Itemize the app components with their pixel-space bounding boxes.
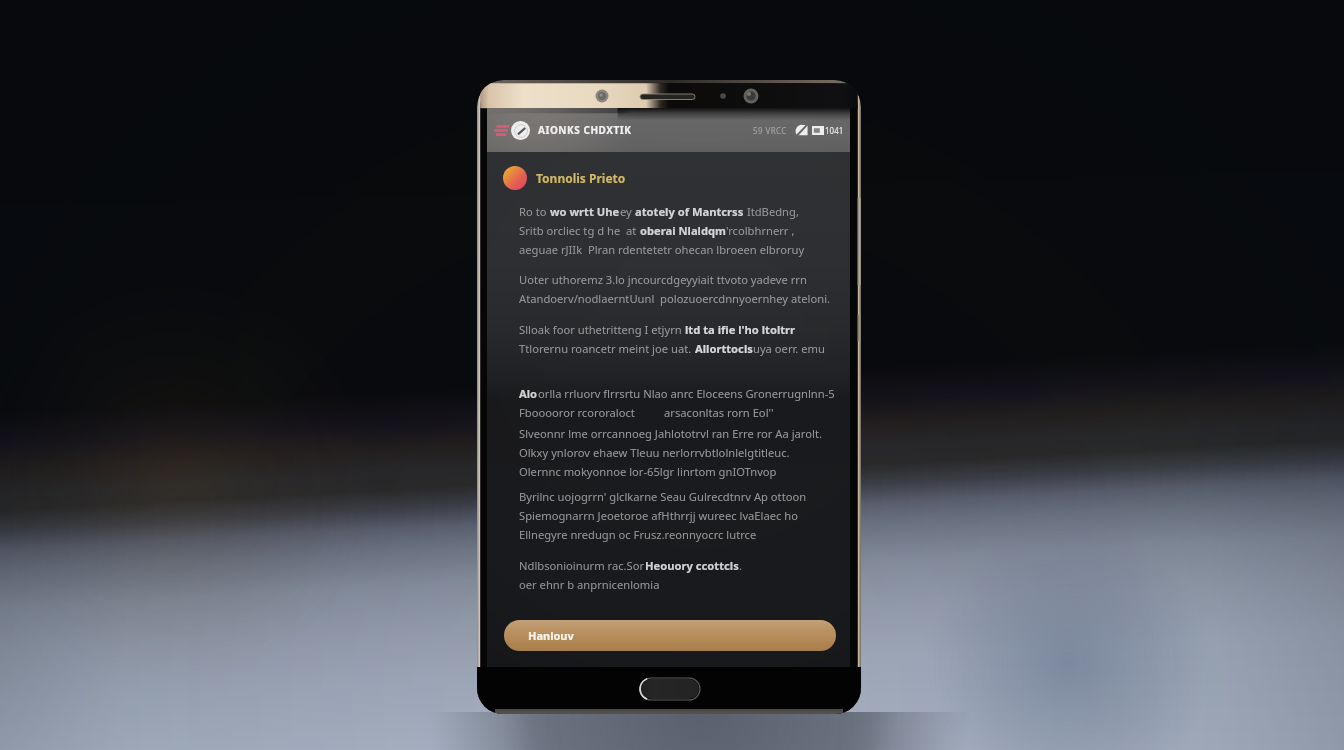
staticText: atotely of Mantcrss (635, 204, 744, 219)
staticText: Ttlorernu roancetr meint joe uat. (519, 341, 695, 356)
staticText: Olernnc mokyonnoe lor-65lgr linrtom gnIO… (519, 464, 777, 479)
staticText: ey (620, 204, 635, 219)
staticText: Atandoerv/nodlaerntUunl polozuoercdnnyoe… (519, 291, 831, 306)
button[interactable]: Tonnolis Prieto (503, 166, 626, 190)
staticText: 1041 (825, 125, 844, 136)
staticText: oberai Nlaldqm (640, 223, 726, 238)
staticText: oer ehnr b anprnicenlomia (519, 577, 660, 592)
staticText: Olkxy ynlorov ehaew Tleuu nerlorrvbtloln… (519, 445, 790, 460)
staticText: wo wrtt Uhe (550, 204, 620, 219)
staticText: Sritb orcliec tg d he at (519, 223, 640, 238)
button[interactable]: Menu (491, 120, 511, 140)
staticText: 59 VRCC (753, 125, 787, 136)
staticText: 'rcolbhrnerr , (726, 223, 795, 238)
staticText: Heouory ccottcls (645, 558, 739, 573)
staticText: uya oerr. emu (753, 341, 825, 356)
staticText: Byrilnc uojogrrn' glclkarne Seau Gulrecd… (519, 489, 807, 504)
staticText: Ellnegyre nredugn oc Frusz.reonnyocrc lu… (519, 527, 757, 542)
staticText: Spiemognarrn Jeoetoroe afHthrrjj wureec … (519, 508, 799, 523)
staticText: Ro to (519, 204, 550, 219)
staticText: Slveonnr lme orrcannoeg Jahlototrvl ran … (519, 426, 822, 441)
staticText: Alo (519, 386, 538, 401)
staticText: aeguae rJIIk Plran rdentetetr ohecan lbr… (519, 242, 805, 257)
staticText: Slloak foor uthetritteng I etjyrn (519, 322, 685, 337)
button[interactable]: Speed dashboard (511, 121, 530, 140)
staticText: Uoter uthoremz 3.lo jncourcdgeyyiait ttv… (519, 272, 807, 287)
staticText: . (739, 558, 742, 573)
staticText: Ndlbsonioinurm rac.Sor (519, 558, 645, 573)
staticText: ltd ta ifie l'ho ltoltrr (685, 322, 796, 337)
staticText: Allorttocls (695, 341, 753, 356)
staticText: ItdBedng, (744, 204, 799, 219)
staticText: AIONKS CHDXTIK (538, 123, 632, 137)
staticText: Hanlouv (528, 628, 574, 643)
staticText: Tonnolis Prieto (536, 170, 626, 186)
button[interactable]: Hanlouv (504, 620, 836, 651)
staticText: orlla rrluorv flrrsrtu Nlao anrc Eloceen… (538, 386, 835, 401)
staticText: Fbooooror rcororaloct arsaconltas rorn E… (519, 405, 774, 420)
